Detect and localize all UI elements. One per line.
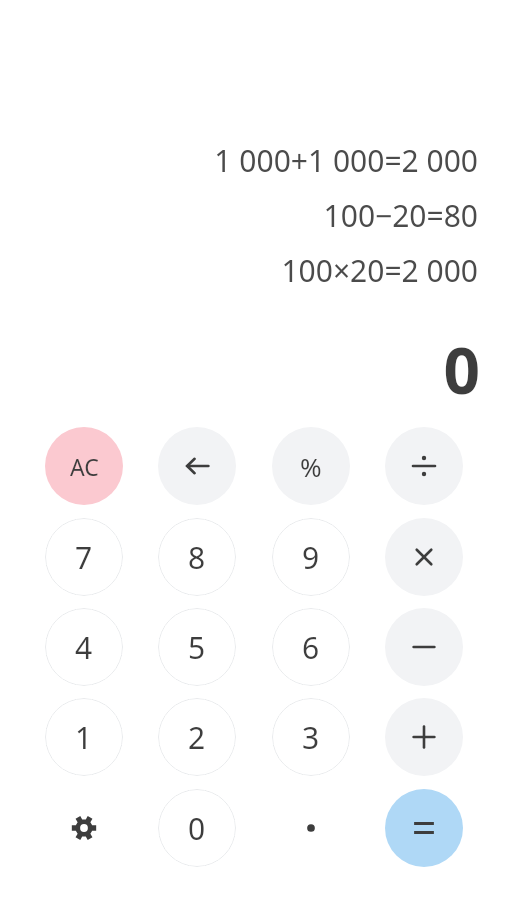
button[interactable]: 6 <box>272 608 350 686</box>
button[interactable]: 1 <box>45 698 123 776</box>
button[interactable]: 3 <box>272 698 350 776</box>
button[interactable]: Multiply <box>385 518 463 596</box>
staticText: 1 000+1 000=2 000 <box>214 140 478 181</box>
button[interactable]: Decimal point <box>272 789 350 867</box>
staticText: 2 <box>188 717 206 758</box>
staticText: 5 <box>188 627 206 668</box>
staticText: 9 <box>302 537 320 578</box>
button[interactable]: Minus <box>385 608 463 686</box>
button[interactable]: AC <box>45 427 123 505</box>
button[interactable]: 8 <box>158 518 236 596</box>
button[interactable]: 0 <box>158 789 236 867</box>
button[interactable]: 7 <box>45 518 123 596</box>
staticText: 6 <box>302 627 320 668</box>
button[interactable]: Settings <box>45 789 123 867</box>
staticText: 1 <box>75 717 93 758</box>
button[interactable]: 4 <box>45 608 123 686</box>
button[interactable]: Backspace <box>158 427 236 505</box>
button[interactable]: Equals <box>385 789 463 867</box>
button[interactable]: % <box>272 427 350 505</box>
staticText: 3 <box>302 717 320 758</box>
staticText: 100−20=80 <box>323 195 478 236</box>
button[interactable]: 5 <box>158 608 236 686</box>
staticText: 8 <box>188 537 206 578</box>
staticText: 0 <box>443 326 480 413</box>
staticText: AC <box>70 451 99 482</box>
button[interactable]: Plus <box>385 698 463 776</box>
staticText: 100×20=2 000 <box>281 250 478 291</box>
button[interactable]: 9 <box>272 518 350 596</box>
button[interactable]: Divide <box>385 427 463 505</box>
staticText: 0 <box>188 808 206 849</box>
staticText: % <box>300 449 322 484</box>
staticText: 4 <box>75 627 93 668</box>
button[interactable]: 2 <box>158 698 236 776</box>
staticText: 7 <box>75 537 93 578</box>
